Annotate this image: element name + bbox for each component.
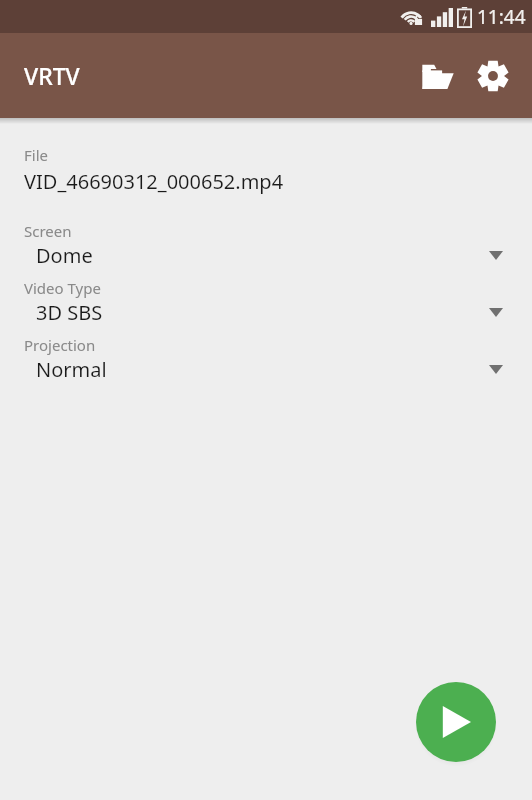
staticText: 3D SBS [36, 299, 103, 326]
button[interactable]: Video Type [0, 278, 532, 335]
button[interactable]: Projection [0, 335, 532, 392]
staticText: VRTV [24, 60, 80, 91]
staticText: Screen [24, 221, 72, 241]
staticText: Video Type [24, 278, 101, 298]
button[interactable]: Play [416, 682, 496, 762]
staticText: Projection [24, 335, 96, 355]
staticText: File [24, 145, 48, 165]
button[interactable]: Open file [409, 48, 465, 104]
staticText: Normal [36, 356, 107, 383]
staticText: VID_46690312_000652.mp4 [24, 168, 284, 195]
button[interactable]: Settings [465, 48, 521, 104]
staticText: Dome [36, 242, 93, 269]
button[interactable]: Screen [0, 221, 532, 278]
staticText: 11:44 [477, 4, 526, 30]
